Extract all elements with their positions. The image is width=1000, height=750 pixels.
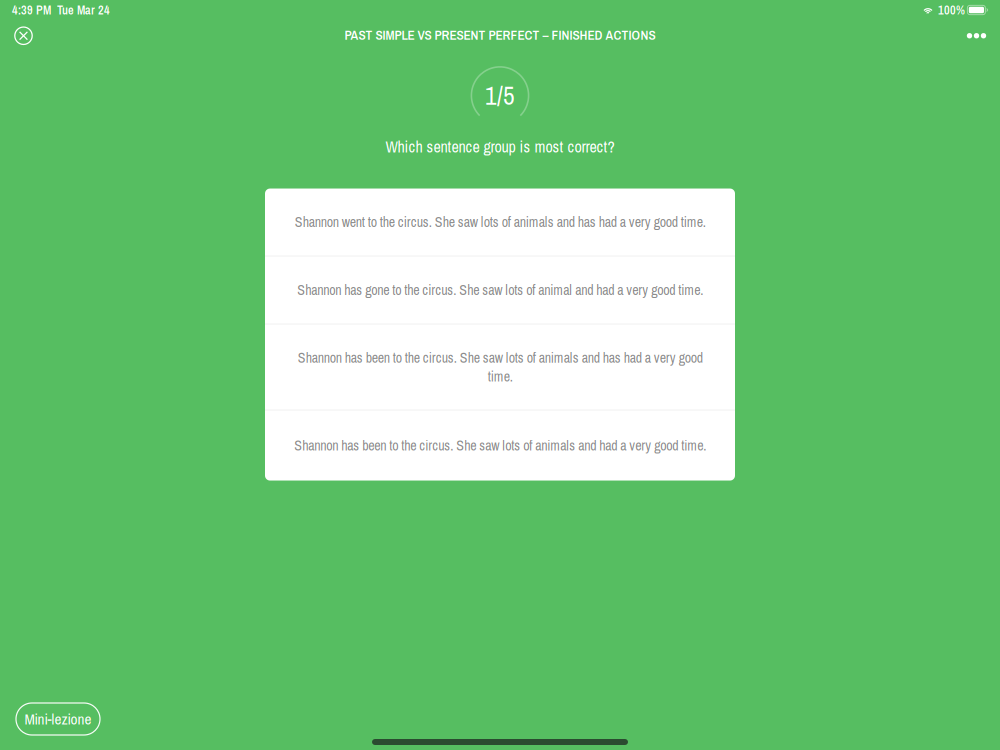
button[interactable]: Shannon has been to the circus. She saw … <box>265 325 735 410</box>
staticText: 100% <box>938 2 965 18</box>
button[interactable]: Shannon has gone to the circus. She saw … <box>265 257 735 324</box>
staticText: Shannon has been to the circus. She saw … <box>297 348 702 386</box>
button[interactable]: More options <box>961 19 992 51</box>
staticText: Shannon has been to the circus. She saw … <box>294 436 706 455</box>
staticText: PAST SIMPLE VS PRESENT PERFECT – FINISHE… <box>344 26 655 44</box>
staticText: Tue Mar 24 <box>57 2 110 18</box>
button[interactable]: Shannon has been to the circus. She saw … <box>265 411 735 481</box>
button[interactable]: Shannon went to the circus. She saw lots… <box>265 189 735 256</box>
staticText: Shannon has gone to the circus. She saw … <box>297 281 703 299</box>
button[interactable]: Close <box>8 19 39 51</box>
staticText: Shannon went to the circus. She saw lots… <box>294 213 705 231</box>
staticText: 1/5 <box>485 78 515 112</box>
button[interactable]: Mini-lezione <box>16 703 100 735</box>
staticText: Mini-lezione <box>24 709 91 729</box>
staticText: 4:39 PM <box>12 2 51 18</box>
staticText: Which sentence group is most correct? <box>385 136 614 158</box>
